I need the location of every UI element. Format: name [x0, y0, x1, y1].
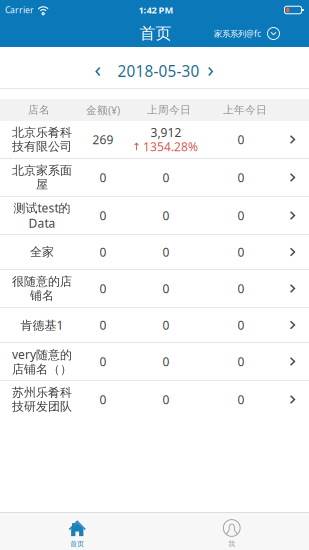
staticText: Data	[28, 215, 55, 231]
staticText: 屋	[36, 177, 48, 192]
staticText: 肯德基1	[20, 317, 63, 333]
staticText: 0	[237, 280, 244, 297]
staticText: 0	[99, 207, 106, 224]
staticText: 0	[237, 169, 244, 186]
staticText: 0	[237, 353, 244, 370]
staticText: 0	[99, 244, 106, 260]
staticText: 测试test的	[13, 200, 70, 216]
staticText: 0	[162, 244, 169, 260]
staticText: 1:42 PM	[138, 4, 173, 16]
staticText: 0	[162, 353, 169, 370]
staticText: 0	[99, 353, 106, 370]
staticText: 金额(¥)	[86, 103, 120, 117]
staticText: 很随意的店	[12, 274, 72, 289]
staticText: 3,912	[150, 124, 181, 140]
staticText: 店铺名（）	[12, 362, 72, 377]
staticText: 0	[99, 280, 106, 297]
staticText: 苏州乐肴科	[12, 385, 72, 400]
staticText: 2018-05-30	[117, 61, 199, 81]
staticText: 家系系列@fc	[214, 28, 261, 39]
staticText: 首页	[139, 23, 171, 44]
button[interactable]: Previous day	[86, 56, 110, 86]
button[interactable]: 全家	[0, 235, 309, 270]
staticText: 铺名	[30, 288, 54, 303]
staticText: 上周今日	[147, 103, 191, 117]
staticText: 0	[99, 169, 106, 186]
staticText: 技研发团队	[12, 399, 72, 414]
staticText: 北京乐肴科	[12, 125, 72, 140]
button[interactable]: 很随意的店	[0, 270, 309, 308]
button[interactable]: 北京乐肴科	[0, 121, 309, 159]
button[interactable]: 首页	[0, 513, 154, 550]
staticText: 0	[237, 244, 244, 260]
staticText: 0	[237, 391, 244, 408]
staticText: 0	[162, 317, 169, 333]
staticText: 0	[237, 207, 244, 224]
staticText: 全家	[30, 244, 54, 259]
staticText: 0	[162, 169, 169, 186]
button[interactable]: 测试test的	[0, 197, 309, 235]
button[interactable]: 苏州乐肴科	[0, 381, 309, 419]
staticText: 0	[99, 391, 106, 408]
staticText: 0	[237, 317, 244, 333]
staticText: 首页	[70, 540, 84, 548]
button[interactable]: Next day	[198, 56, 222, 86]
staticText: 0	[162, 207, 169, 224]
staticText: Carrier	[5, 4, 34, 16]
staticText: 店名	[28, 103, 50, 117]
staticText: very随意的	[12, 346, 72, 363]
button[interactable]: 北京家系面	[0, 159, 309, 197]
staticText: 北京家系面	[12, 163, 72, 178]
staticText: 0	[162, 391, 169, 408]
staticText: 0	[162, 280, 169, 297]
staticText: 1354.28%	[143, 138, 198, 155]
button[interactable]: 肯德基1	[0, 308, 309, 343]
staticText: 0	[237, 131, 244, 148]
button[interactable]: 我	[154, 513, 309, 550]
button[interactable]: very随意的	[0, 343, 309, 381]
staticText: 上年今日	[223, 103, 267, 117]
staticText: 0	[99, 317, 106, 333]
staticText: 269	[92, 131, 113, 148]
staticText: 我	[228, 540, 235, 548]
button[interactable]: 家系系列@fc	[208, 20, 286, 47]
staticText: 技有限公司	[12, 139, 72, 154]
